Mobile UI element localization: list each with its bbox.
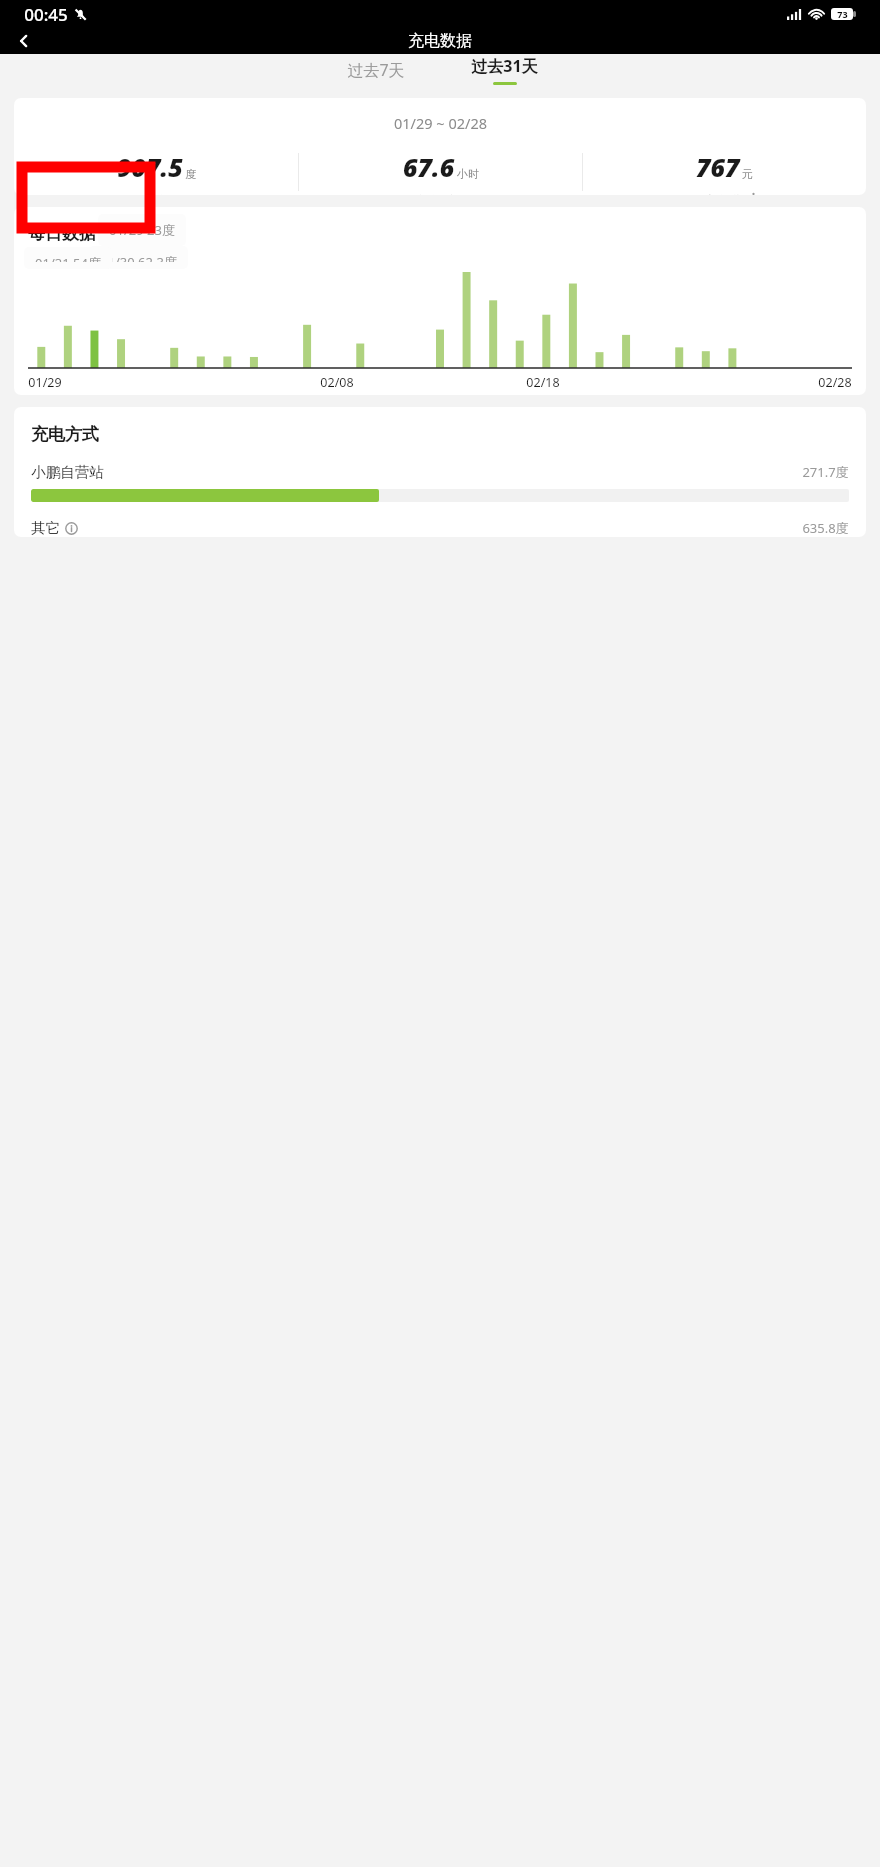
staticText: 01/29 <box>28 374 62 391</box>
button[interactable]: 过去31天 <box>457 54 552 86</box>
button[interactable]: Back <box>9 28 39 54</box>
staticText: 元 <box>742 167 753 181</box>
staticText: 度 <box>185 167 196 181</box>
staticText: 67.6 <box>403 150 455 184</box>
staticText: 767 <box>696 150 740 184</box>
staticText: 过去31天 <box>471 55 538 77</box>
staticText: 过去7天 <box>347 59 405 81</box>
staticText: 总充电量 <box>129 193 183 195</box>
staticText: 635.8度 <box>802 519 849 537</box>
staticText: 73 <box>837 8 848 20</box>
button[interactable]: 01/29 23度 <box>98 214 186 246</box>
button[interactable]: 01/31 54度 <box>24 247 112 269</box>
staticText: 00:45 <box>24 3 68 26</box>
staticText: 小鹏自营站 <box>31 463 104 481</box>
staticText: 01/30 62.3度 <box>100 253 177 262</box>
staticText: 907.5 <box>117 150 183 184</box>
staticText: 271.7度 <box>802 463 849 481</box>
staticText: 02/18 <box>526 374 560 391</box>
staticText: 小时 <box>457 167 479 181</box>
staticText: 每日数据 <box>28 223 96 244</box>
staticText: 其它 <box>31 519 60 537</box>
button[interactable]: 01/30 62.3度 <box>89 246 188 269</box>
staticText: 充电方式 <box>31 424 99 445</box>
button[interactable]: 过去7天 <box>328 54 423 86</box>
button[interactable]: Info <box>65 522 78 535</box>
staticText: 01/29 23度 <box>109 221 175 239</box>
staticText: 01/31 54度 <box>35 254 101 262</box>
staticText: 01/29 ~ 02/28 <box>394 113 487 133</box>
staticText: 02/08 <box>320 374 354 391</box>
staticText: 02/28 <box>818 374 852 391</box>
button[interactable]: Info <box>747 193 760 195</box>
staticText: 充电数据 <box>408 31 472 51</box>
